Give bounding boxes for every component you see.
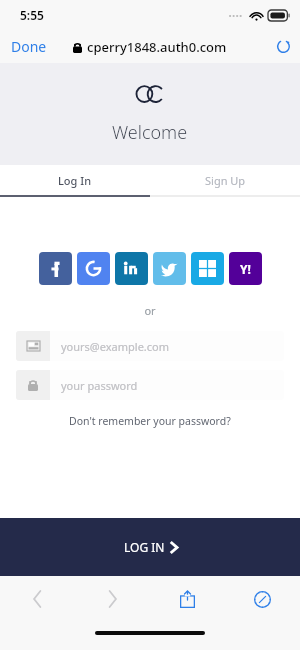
- button[interactable]: Share: [150, 576, 225, 622]
- button[interactable]: Microsoft: [191, 252, 224, 285]
- button[interactable]: Forward: [75, 576, 150, 622]
- button[interactable]: Sign Up: [150, 165, 300, 195]
- staticText: Don't remember your password?: [69, 414, 231, 428]
- button[interactable]: Log In: [0, 165, 150, 195]
- button[interactable]: Don't remember your password?: [0, 414, 300, 428]
- button[interactable]: Yahoo: [229, 252, 262, 285]
- button[interactable]: yours@example.com: [16, 331, 284, 361]
- staticText: cperry1848.auth0.com: [87, 38, 227, 56]
- staticText: or: [0, 303, 300, 318]
- staticText: 5:55: [20, 7, 44, 23]
- staticText: your password: [61, 378, 138, 393]
- button[interactable]: Facebook: [39, 252, 72, 285]
- staticText: Welcome: [112, 120, 188, 145]
- staticText: Y!: [240, 261, 251, 277]
- staticText: Log In: [58, 173, 92, 188]
- staticText: yours@example.com: [61, 339, 169, 354]
- button[interactable]: LinkedIn: [115, 252, 148, 285]
- button[interactable]: LOG IN: [0, 518, 300, 576]
- staticText: Sign Up: [205, 173, 246, 188]
- button[interactable]: Reload: [267, 36, 300, 57]
- staticText: LOG IN: [124, 539, 165, 555]
- button[interactable]: your password: [16, 370, 284, 400]
- staticText: Done: [11, 37, 47, 56]
- button[interactable]: Google: [77, 252, 110, 285]
- button[interactable]: Back: [0, 576, 75, 622]
- button[interactable]: Twitter: [153, 252, 186, 285]
- button[interactable]: Done: [0, 32, 58, 61]
- button[interactable]: Bookmarks: [225, 576, 300, 622]
